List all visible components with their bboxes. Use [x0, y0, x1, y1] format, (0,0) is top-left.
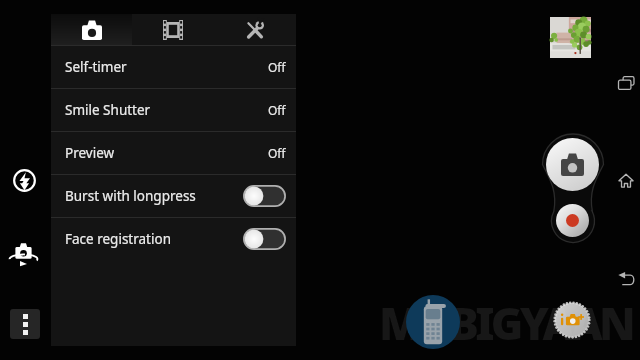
staticText: Burst with longpress [65, 187, 196, 205]
staticText: Off [268, 102, 286, 118]
button[interactable]: More options [10, 309, 40, 339]
button[interactable]: Smile Shutter [51, 89, 296, 131]
button[interactable]: Video camera tab [132, 14, 214, 45]
button[interactable]: Last photo [550, 17, 591, 58]
button[interactable]: Home [612, 166, 640, 194]
staticText: Smile Shutter [65, 101, 151, 119]
staticText: Preview [65, 144, 115, 162]
button[interactable]: Record video [556, 204, 589, 237]
staticText: Off [268, 59, 286, 75]
button[interactable]: Switch camera [8, 238, 39, 269]
button[interactable]: Recents [612, 69, 640, 97]
staticText: MOBIGYAAN [379, 293, 633, 353]
button[interactable]: Self-timer [51, 46, 296, 88]
staticText: Off [268, 145, 286, 161]
button[interactable]: Camera modes [553, 301, 591, 339]
button[interactable]: Burst with longpress [51, 175, 296, 217]
button[interactable]: Take photo [546, 138, 599, 191]
button[interactable]: Settings tab [214, 14, 296, 45]
button[interactable]: Flash auto [10, 166, 39, 195]
button[interactable]: Face registration [51, 218, 296, 260]
staticText: Face registration [65, 230, 171, 248]
button[interactable]: Preview [51, 132, 296, 174]
button[interactable]: Photo camera tab [51, 14, 132, 45]
button[interactable]: Back [612, 265, 640, 293]
staticText: Self-timer [65, 58, 127, 76]
